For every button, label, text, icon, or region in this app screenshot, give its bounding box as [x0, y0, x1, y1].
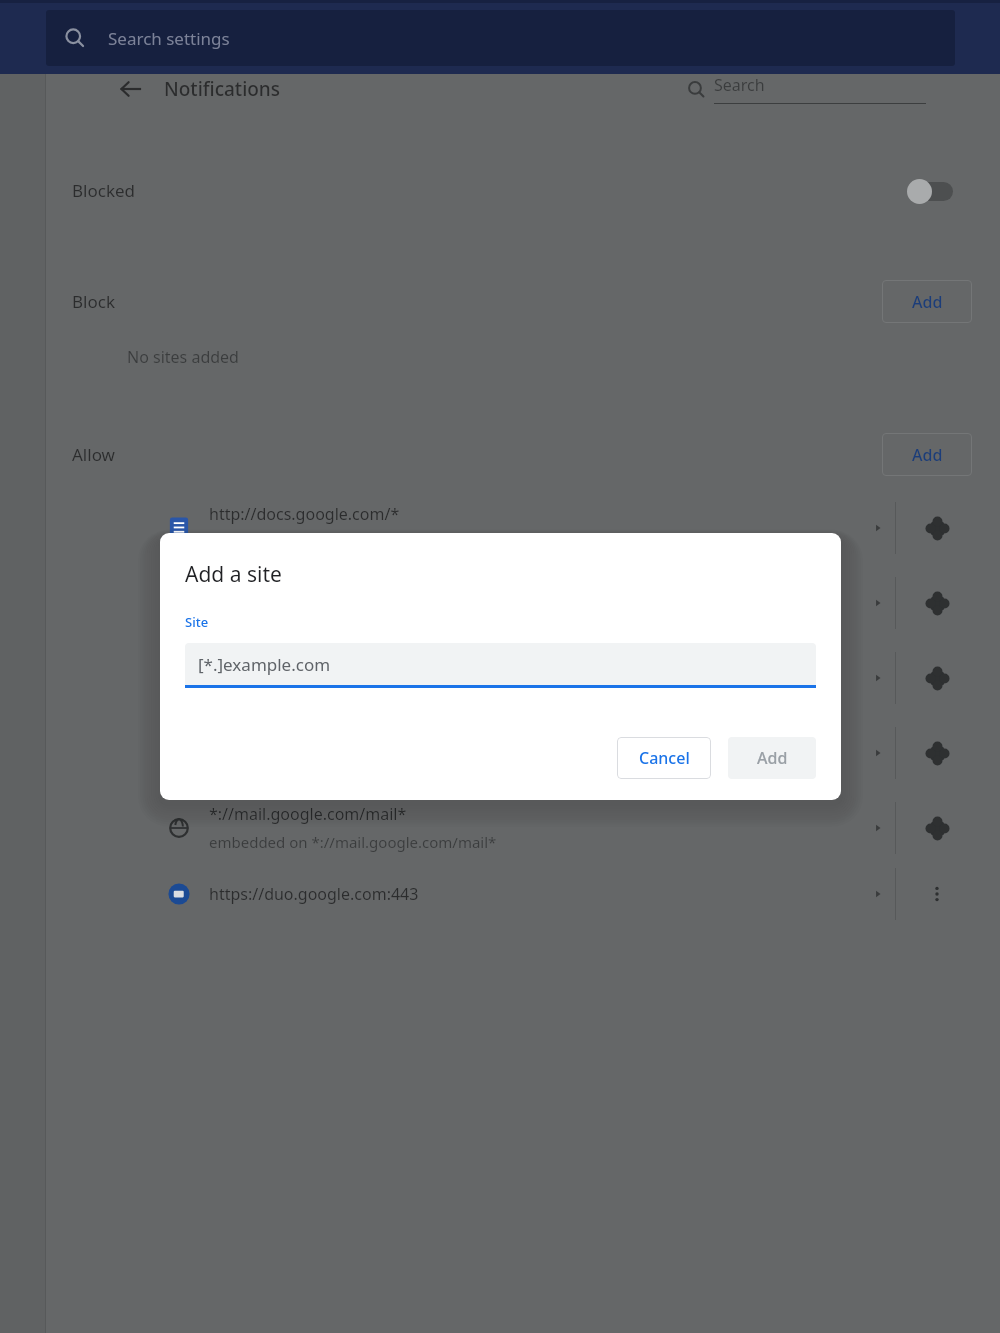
staticText: http://docs.google.com/* [209, 503, 400, 525]
button[interactable]: http://docs.google.com/* [46, 640, 1000, 715]
staticText: Blocked [72, 179, 136, 202]
button[interactable]: Extension [920, 811, 954, 845]
button[interactable]: Add [728, 737, 816, 779]
button[interactable]: Extension [920, 586, 954, 620]
staticText: Allow [72, 443, 115, 466]
button[interactable]: Extension [920, 511, 954, 545]
staticText: Site [185, 613, 209, 631]
staticText: https://duo.google.com:443 [209, 883, 419, 905]
button[interactable]: [*.]example.com [185, 643, 816, 688]
staticText: embedded on http://docs.google.com/* [209, 532, 490, 552]
button[interactable]: Back [116, 74, 146, 104]
staticText: Add [757, 747, 788, 769]
button[interactable]: *://mail.google.com/mail* [46, 790, 1000, 865]
staticText: http://docs.google.com/* [209, 653, 400, 675]
staticText: https://drive.google.com/* [209, 578, 410, 600]
button[interactable]: Add [882, 433, 972, 476]
staticText: Notifications [164, 76, 281, 102]
button[interactable]: Extension [920, 736, 954, 770]
button[interactable]: https://duo.google.com:443 [46, 865, 1000, 922]
button[interactable]: Blocked [46, 152, 1000, 229]
button[interactable]: https://drive.google.com/* [46, 565, 1000, 640]
button[interactable]: Cancel [617, 737, 711, 779]
staticText: Add [912, 291, 943, 313]
staticText: [*.]example.com [198, 653, 331, 676]
staticText: embedded on http://docs.google.com/* [209, 682, 490, 702]
button[interactable]: Search settings [46, 10, 955, 66]
other: Blocked toggle [907, 178, 953, 204]
button[interactable]: http://docs.google.com/* [46, 490, 1000, 565]
button[interactable]: More options [920, 877, 954, 911]
staticText: *://mail.google.com/mail* [209, 803, 407, 825]
staticText: No sites added [127, 346, 239, 368]
button[interactable]: https://drive.google.com/* [46, 715, 1000, 790]
staticText: embedded on *://mail.google.com/mail* [209, 832, 497, 852]
staticText: Block [72, 290, 115, 313]
staticText: Cancel [639, 747, 690, 769]
button[interactable]: Add [882, 280, 972, 323]
staticText: Add [912, 444, 943, 466]
staticText: Search settings [108, 27, 230, 50]
staticText: Add a site [185, 560, 282, 589]
button[interactable]: Extension [920, 661, 954, 695]
staticText: Search [714, 74, 765, 96]
